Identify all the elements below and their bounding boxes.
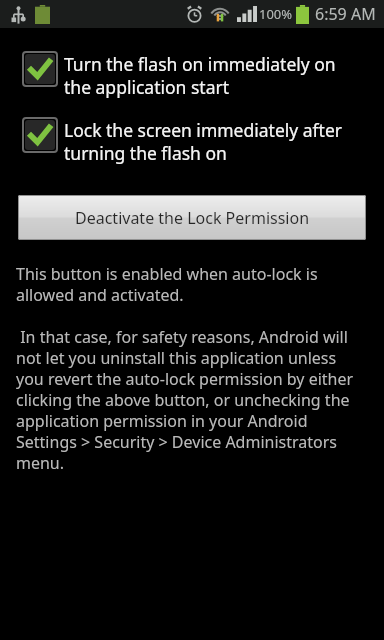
other: Checked [22,117,58,153]
staticText: Deactivate the Lock Permission [75,207,310,229]
staticText: 6:59 AM [315,3,376,25]
staticText: 100% [259,5,293,23]
button[interactable]: Checked [0,117,384,165]
staticText: In that case, for safety reasons, Androi… [16,326,354,474]
staticText: This button is enabled when auto-lock is… [16,263,318,306]
button[interactable]: Checked [0,51,384,99]
staticText: Turn the flash on immediately on the app… [64,52,336,99]
staticText: Lock the screen immediately after turnin… [64,118,343,165]
other: Checked [22,51,58,87]
button[interactable]: Deactivate the Lock Permission [18,195,366,240]
